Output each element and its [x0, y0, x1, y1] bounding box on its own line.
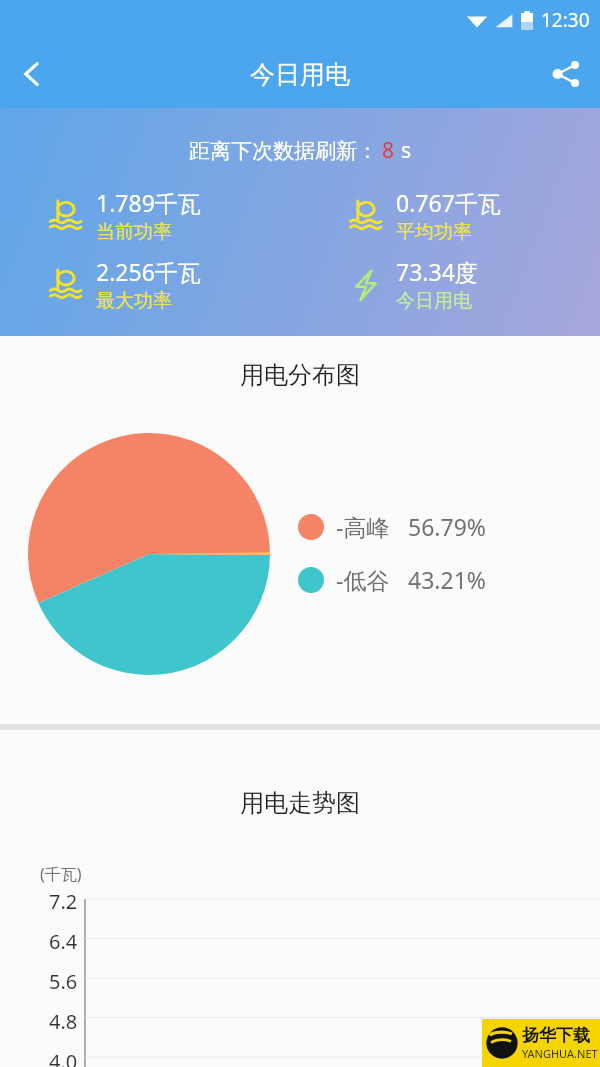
staticText: 4.0: [49, 1048, 78, 1067]
staticText: 最大功率: [96, 289, 172, 313]
staticText: 56.79%: [408, 511, 486, 542]
staticText: -高峰: [336, 511, 390, 542]
staticText: -低谷: [336, 564, 390, 595]
staticText: 用电分布图: [240, 360, 360, 390]
staticText: 73.34度: [396, 256, 478, 287]
staticText: 12:30: [541, 7, 590, 33]
staticText: 今日用电: [250, 59, 350, 90]
staticText: 5.6: [49, 968, 78, 995]
button[interactable]: -高峰: [298, 511, 486, 542]
button[interactable]: Back: [4, 46, 60, 102]
button[interactable]: Share: [538, 46, 594, 102]
staticText: 6.4: [49, 928, 78, 955]
staticText: 1.789千瓦: [96, 187, 201, 218]
staticText: s: [401, 136, 412, 165]
staticText: 当前功率: [96, 220, 172, 244]
staticText: 7.2: [49, 888, 78, 915]
staticText: 4.8: [49, 1008, 78, 1035]
staticText: 用电走势图: [240, 788, 360, 818]
staticText: 2.256千瓦: [96, 256, 201, 287]
staticText: 43.21%: [408, 564, 486, 595]
staticText: (千瓦): [40, 863, 82, 885]
staticText: 扬华下载: [522, 1025, 590, 1046]
staticText: 8: [382, 136, 395, 165]
staticText: 今日用电: [396, 289, 472, 313]
staticText: 平均功率: [396, 220, 472, 244]
staticText: 0.767千瓦: [396, 187, 501, 218]
button[interactable]: -低谷: [298, 564, 486, 595]
staticText: YANGHUA.NET: [522, 1046, 598, 1061]
staticText: 距离下次数据刷新：: [189, 138, 378, 164]
